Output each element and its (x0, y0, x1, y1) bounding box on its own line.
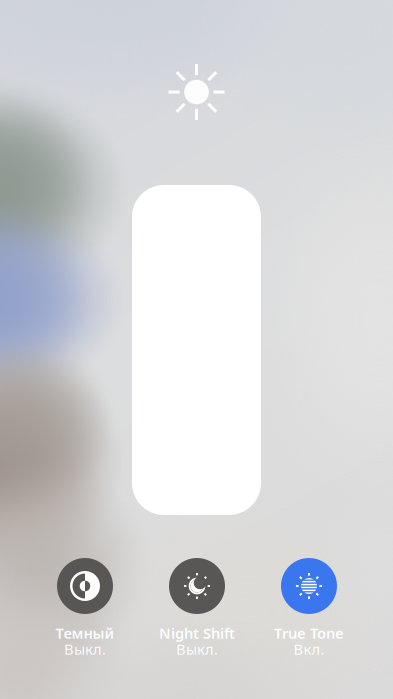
staticText: Night Shift (159, 623, 235, 643)
staticText: True Tone (274, 623, 344, 643)
button[interactable]: Темный (29, 558, 141, 662)
staticText: Выкл. (64, 639, 106, 659)
staticText: Выкл. (176, 639, 218, 659)
button[interactable]: Night Shift (141, 558, 253, 662)
staticText: Вкл. (293, 639, 324, 659)
button[interactable]: Brightness (132, 185, 261, 515)
button[interactable]: True Tone (253, 558, 365, 662)
staticText: Темный (55, 623, 114, 643)
